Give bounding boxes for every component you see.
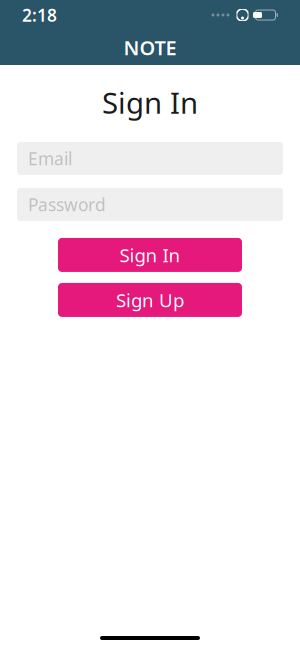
button[interactable]: Sign Up bbox=[58, 283, 242, 317]
staticText: Password bbox=[28, 193, 106, 216]
staticText: Sign In bbox=[102, 83, 198, 122]
staticText: Email bbox=[28, 147, 72, 170]
staticText: NOTE bbox=[123, 34, 176, 61]
staticText: 2:18 bbox=[22, 3, 57, 26]
button[interactable]: Sign In bbox=[58, 238, 242, 272]
staticText: Sign In bbox=[119, 243, 180, 267]
staticText: Sign Up bbox=[116, 288, 184, 312]
